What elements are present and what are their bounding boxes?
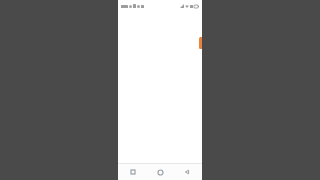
button[interactable]: Open side panel: [199, 37, 202, 49]
button[interactable]: Home: [148, 164, 172, 180]
button[interactable]: Back: [175, 164, 199, 180]
button[interactable]: Recent apps: [121, 164, 145, 180]
